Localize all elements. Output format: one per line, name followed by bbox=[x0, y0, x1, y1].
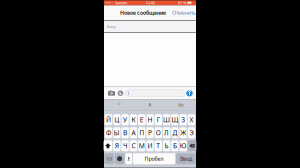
button[interactable]: К bbox=[130, 114, 137, 125]
staticText: Д bbox=[172, 128, 177, 137]
staticText: 123 bbox=[106, 156, 112, 161]
button[interactable]: Д bbox=[171, 127, 179, 138]
staticText: Р bbox=[148, 128, 152, 137]
staticText: Кому: bbox=[106, 24, 116, 29]
button[interactable]: М bbox=[138, 140, 145, 151]
staticText: В bbox=[123, 128, 127, 137]
button[interactable]: Ы bbox=[113, 127, 120, 138]
button[interactable]: Н bbox=[146, 114, 154, 125]
staticText: Л bbox=[164, 128, 169, 137]
staticText: Пробел bbox=[145, 155, 164, 162]
staticText: Я bbox=[148, 102, 151, 108]
staticText: Ы bbox=[114, 128, 120, 137]
staticText: Б bbox=[173, 141, 177, 150]
button[interactable]: Ш bbox=[163, 114, 170, 125]
button[interactable]: Отменить bbox=[172, 5, 196, 20]
staticText: 87 % bbox=[178, 0, 186, 5]
staticText: Т bbox=[156, 141, 160, 150]
staticText: Й bbox=[106, 115, 111, 124]
button[interactable]: Attachment bbox=[116, 87, 125, 100]
staticText: Н bbox=[147, 115, 152, 124]
staticText: У bbox=[123, 115, 127, 124]
button[interactable]: Message bbox=[125, 87, 185, 100]
staticText: Я bbox=[115, 141, 119, 150]
staticText: Ф bbox=[106, 128, 111, 137]
button[interactable]: Delete bbox=[188, 140, 196, 151]
button[interactable]: Send bbox=[185, 87, 193, 100]
button[interactable]: Ф bbox=[105, 127, 112, 138]
staticText: З bbox=[181, 115, 185, 124]
button[interactable]: З bbox=[179, 114, 187, 125]
staticText: Ц bbox=[114, 115, 119, 124]
staticText: П bbox=[139, 128, 144, 137]
button[interactable]: Э bbox=[188, 127, 195, 138]
button[interactable]: А bbox=[130, 127, 137, 138]
staticText: Х bbox=[189, 115, 193, 124]
button[interactable]: Я bbox=[113, 140, 120, 151]
staticText: Ш bbox=[163, 115, 170, 124]
button[interactable]: Не bbox=[165, 100, 196, 110]
staticText: И bbox=[147, 141, 152, 150]
button[interactable]: Ц bbox=[113, 114, 120, 125]
button[interactable]: П bbox=[138, 127, 145, 138]
button[interactable]: Я bbox=[135, 100, 165, 110]
button[interactable]: Shift bbox=[104, 140, 112, 151]
button[interactable]: У bbox=[121, 114, 129, 125]
button[interactable]: О bbox=[155, 127, 162, 138]
staticText: С bbox=[131, 141, 135, 150]
staticText: О bbox=[156, 128, 161, 137]
staticText: М bbox=[139, 141, 145, 150]
button[interactable]: Й bbox=[105, 114, 112, 125]
button[interactable]: Ввод bbox=[176, 153, 196, 164]
staticText: Не bbox=[178, 102, 183, 108]
button[interactable]: Camera bbox=[107, 87, 116, 100]
button[interactable]: Б bbox=[171, 140, 179, 151]
button[interactable]: Щ bbox=[171, 114, 179, 125]
button[interactable]: Ч bbox=[121, 140, 129, 151]
button[interactable]: Р bbox=[146, 127, 154, 138]
button[interactable]: Л bbox=[163, 127, 170, 138]
button[interactable]: Ю bbox=[179, 140, 187, 151]
button[interactable]: Г bbox=[155, 114, 162, 125]
button[interactable]: Dictation bbox=[125, 153, 132, 164]
button[interactable]: С bbox=[130, 140, 137, 151]
button[interactable]: Ь bbox=[163, 140, 170, 151]
button[interactable]: И bbox=[146, 140, 154, 151]
staticText: Ю bbox=[180, 141, 187, 150]
staticText: Ввод bbox=[180, 155, 192, 162]
staticText: Ь bbox=[165, 141, 169, 150]
staticText: 10:48 bbox=[145, 0, 154, 5]
button[interactable]: 123 bbox=[104, 153, 114, 164]
staticText: Билайн bbox=[115, 0, 127, 5]
staticText: Новое сообщение bbox=[120, 9, 166, 16]
staticText: Ж bbox=[180, 128, 186, 137]
staticText: К bbox=[131, 115, 135, 124]
button[interactable]: Х bbox=[188, 114, 195, 125]
staticText: А bbox=[131, 128, 135, 137]
button[interactable]: Пробел bbox=[133, 153, 175, 164]
staticText: Щ bbox=[171, 115, 178, 124]
button[interactable]: Ж bbox=[179, 127, 187, 138]
button[interactable]: В bbox=[121, 127, 129, 138]
staticText: Г bbox=[157, 115, 160, 124]
button[interactable]: Е bbox=[138, 114, 145, 125]
staticText: Ч bbox=[123, 141, 127, 150]
staticText: Е bbox=[140, 115, 144, 124]
staticText: Э bbox=[189, 128, 193, 137]
staticText: Отменить bbox=[172, 9, 196, 16]
button[interactable]: Т bbox=[155, 140, 162, 151]
button[interactable]: Switch keyboard bbox=[115, 153, 124, 164]
staticText: “ bbox=[118, 102, 119, 108]
